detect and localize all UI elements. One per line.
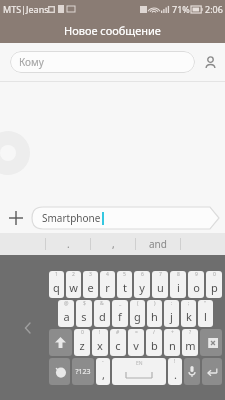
staticText: . [174, 367, 177, 382]
staticText: _ [119, 300, 122, 307]
staticText: ?123 [75, 367, 91, 377]
staticText: 1 [55, 271, 58, 278]
staticText: 0 [213, 271, 216, 278]
button[interactable]: , [91, 233, 135, 255]
button[interactable]: # [110, 329, 126, 356]
button[interactable]: Shift [49, 329, 72, 356]
staticText: 7 [159, 271, 162, 278]
button[interactable]: - [96, 358, 110, 385]
staticText: Новое сообщение [64, 23, 161, 38]
staticText: ! [99, 329, 101, 336]
staticText: g [134, 309, 141, 324]
button[interactable]: Smartphone [32, 207, 219, 229]
staticText: t [123, 280, 127, 295]
staticText: $ [83, 300, 86, 307]
button[interactable]: = [128, 329, 144, 356]
button[interactable]: 5 [117, 271, 132, 298]
button[interactable]: ! [92, 329, 108, 356]
staticText: " [204, 300, 207, 307]
staticText: Smartphone [42, 211, 101, 225]
staticText: Кому [19, 55, 44, 69]
staticText: . [67, 237, 70, 251]
staticText: , [112, 237, 115, 251]
button[interactable]: ; [181, 300, 196, 327]
staticText: p [211, 280, 218, 295]
staticText: @ [64, 300, 69, 307]
staticText: 9 [195, 271, 198, 278]
button[interactable]: ?123 [72, 358, 94, 385]
button[interactable]: 2 [66, 271, 81, 298]
button[interactable]: Emoji [49, 358, 70, 385]
staticText: w [69, 280, 78, 295]
staticText: d [99, 309, 106, 324]
button[interactable]: Выбрать контакт [195, 43, 225, 81]
staticText: o [193, 280, 200, 295]
button[interactable]: 8 [170, 271, 186, 298]
staticText: r [105, 280, 110, 295]
staticText: a [63, 309, 70, 324]
staticText: : [171, 300, 173, 307]
button[interactable]: Space [112, 358, 166, 385]
staticText: l [204, 309, 207, 324]
staticText: e [87, 280, 94, 295]
button[interactable]: + [164, 329, 180, 356]
staticText: 5 [123, 271, 126, 278]
button[interactable]: Backspace [200, 329, 222, 356]
staticText: 8 [177, 271, 180, 278]
staticText: & [100, 300, 104, 307]
button[interactable]: Добавить вложение [0, 203, 32, 233]
button[interactable]: and [136, 233, 180, 255]
staticText: k [186, 309, 192, 324]
staticText: i [177, 280, 180, 295]
button[interactable]: Voice input [184, 358, 200, 385]
button[interactable]: _ [112, 300, 128, 327]
button[interactable]: Кому [10, 51, 195, 73]
button[interactable]: : [164, 300, 179, 327]
button[interactable]: 6 [134, 271, 150, 298]
staticText: s [81, 309, 87, 324]
staticText: c [115, 338, 121, 353]
staticText: u [157, 280, 164, 295]
button[interactable]: 7 [152, 271, 168, 298]
button[interactable]: / [146, 329, 162, 356]
staticText: b [151, 338, 158, 353]
button[interactable]: Enter [202, 358, 222, 385]
staticText: n [169, 338, 176, 353]
button[interactable]: ? [182, 329, 198, 356]
button[interactable]: 1 [49, 271, 64, 298]
button[interactable]: $ [76, 300, 92, 327]
staticText: 2 [72, 271, 75, 278]
staticText: 6 [141, 271, 144, 278]
staticText: # [116, 329, 120, 336]
staticText: ! [174, 358, 176, 365]
staticText: j [170, 309, 173, 324]
button[interactable]: 3 [83, 271, 98, 298]
staticText: m [185, 338, 196, 353]
staticText: x [97, 338, 103, 353]
button[interactable]: ) [147, 300, 162, 327]
button[interactable]: " [198, 300, 213, 327]
button[interactable]: 4 [100, 271, 115, 298]
button[interactable]: @ [58, 300, 74, 327]
button[interactable]: 0 [206, 271, 222, 298]
staticText: q [53, 280, 60, 295]
staticText: - [102, 358, 104, 365]
staticText: 4 [106, 271, 109, 278]
button[interactable]: 9 [188, 271, 204, 298]
staticText: = [135, 329, 138, 336]
button[interactable]: & [94, 300, 110, 327]
button[interactable]: Переместить клавиатуру [18, 318, 38, 338]
staticText: y [139, 280, 145, 295]
staticText: z [79, 338, 85, 353]
staticText: / [153, 329, 155, 336]
staticText: 2:06 [205, 3, 223, 15]
staticText: 71% [172, 3, 190, 15]
button[interactable]: 0 [74, 329, 90, 356]
staticText: v [133, 338, 139, 353]
button[interactable]: ( [130, 300, 145, 327]
button[interactable]: ! [168, 358, 182, 385]
staticText: ? [189, 329, 192, 336]
